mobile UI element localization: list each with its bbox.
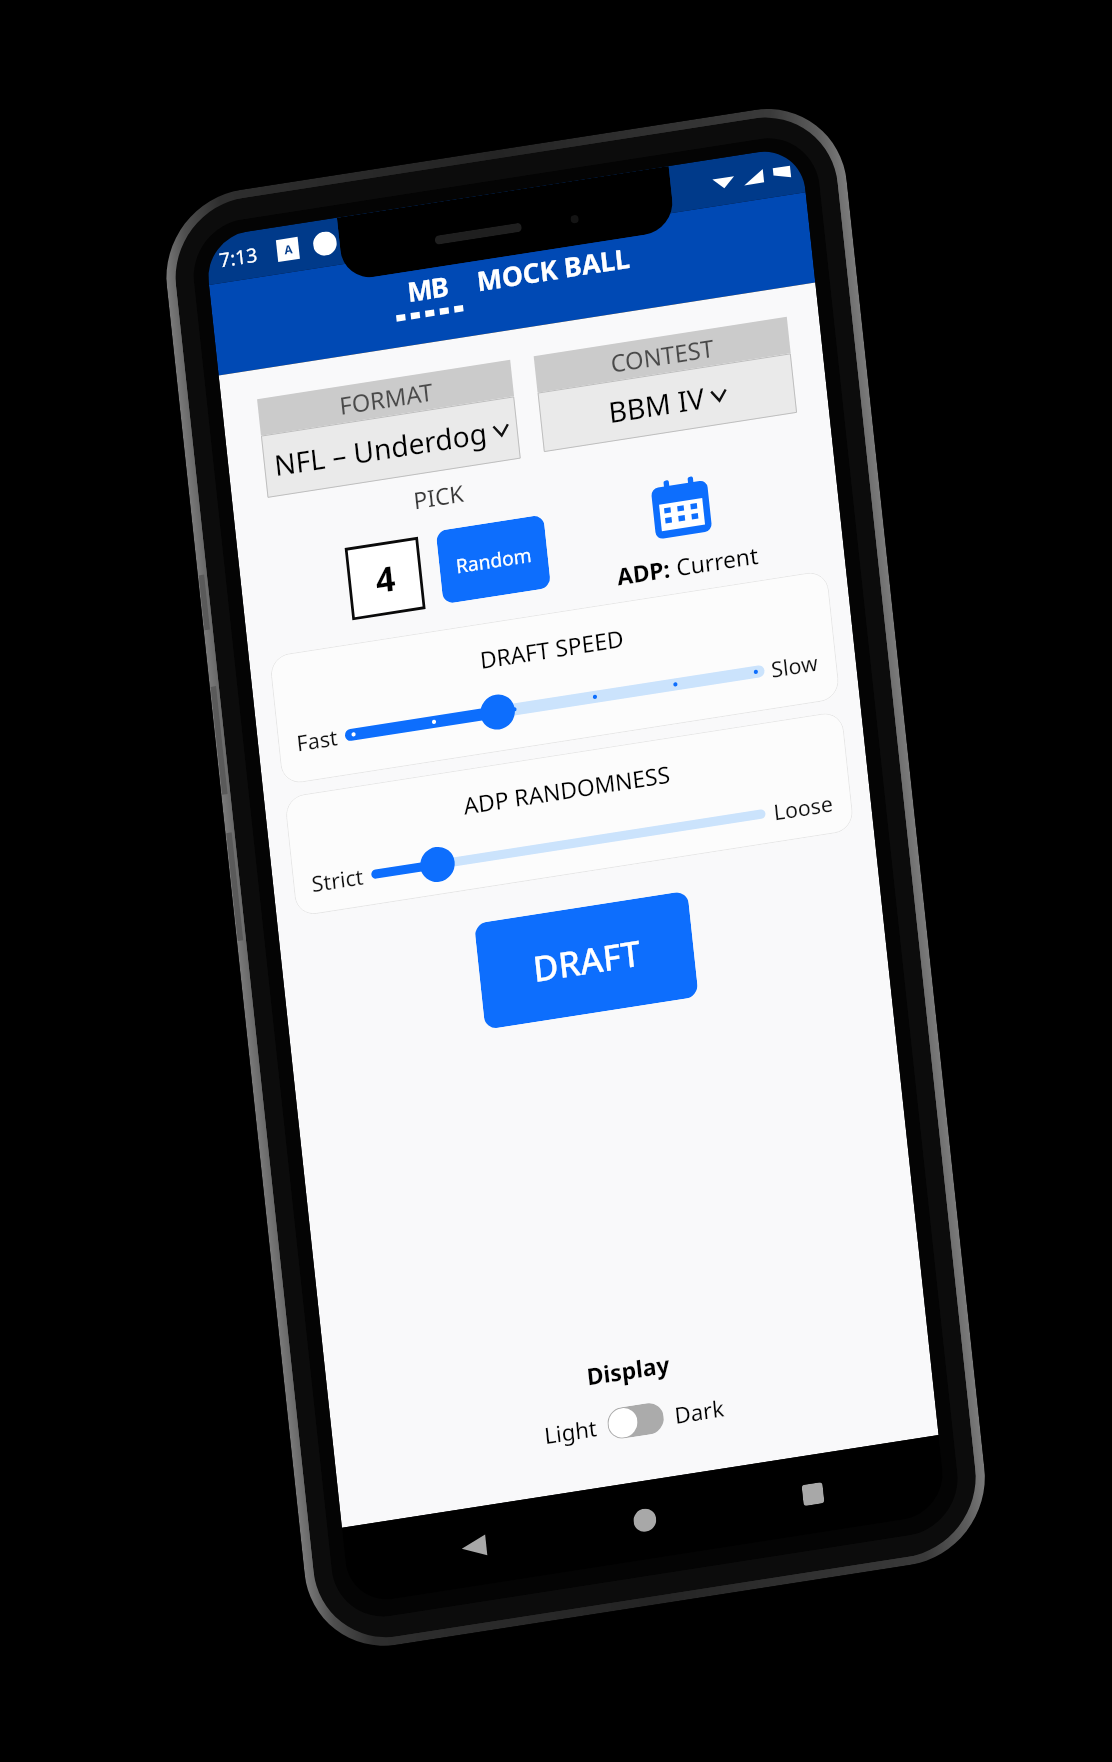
staticText: Strict [297,840,377,920]
staticText: DRAFT [510,883,664,1037]
staticText: ADP: [602,530,685,614]
staticText: DRAFT SPEED [465,562,639,735]
other: Calendar [626,451,737,563]
staticText: BBM IV [590,338,723,472]
staticText: 4 [353,545,418,612]
button[interactable]: Display theme toggle [592,1377,679,1464]
staticText: A [276,237,300,262]
button[interactable]: DRAFT [428,801,745,1119]
staticText: MB [389,251,465,327]
staticText: 7:13 [206,225,270,289]
button[interactable]: Back [450,1522,498,1571]
staticText: Display [572,1313,685,1427]
button[interactable]: Recent apps [792,1473,834,1515]
button[interactable]: ADP RANDOMNESS [356,633,781,1055]
staticText: Slow [757,628,832,704]
button[interactable]: Home [622,1498,667,1543]
staticText: MOCK BALL [459,175,648,363]
button[interactable]: DRAFT SPEED [331,481,778,925]
staticText: Current [655,502,773,620]
staticText: CONTEST [595,288,729,422]
staticText: PICK [319,378,557,615]
staticText: Dark [660,1372,739,1451]
staticText: Random [443,509,545,611]
staticText: Fast [282,705,352,775]
staticText: NFL – Underdog [255,324,505,573]
button[interactable]: 4 [313,506,457,651]
staticText: Loose [759,763,848,852]
button[interactable]: FORMAT [214,254,563,604]
staticText: ADP RANDOMNESS [448,671,685,908]
staticText: FORMAT [324,336,448,460]
button[interactable]: Calendar [527,373,839,686]
staticText: Light [530,1390,611,1472]
button[interactable]: CONTEST [492,211,839,558]
button[interactable]: Random [404,469,583,649]
